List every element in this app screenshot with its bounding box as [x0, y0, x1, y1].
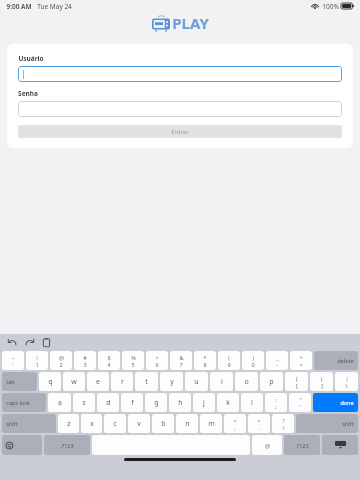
- staticText: |: [345, 375, 349, 382]
- button[interactable]: caps lock: [2, 393, 46, 412]
- staticText: .?123: [60, 442, 74, 449]
- staticText: ]: [321, 382, 323, 389]
- button[interactable]: i: [210, 372, 233, 391]
- button[interactable]: Paste: [41, 337, 52, 348]
- button[interactable]: #: [74, 351, 96, 370]
- button[interactable]: (: [218, 351, 240, 370]
- staticText: Senha: [18, 89, 38, 98]
- button[interactable]: shift: [2, 414, 56, 433]
- button[interactable]: t: [135, 372, 158, 391]
- staticText: [: [296, 382, 298, 389]
- staticText: !: [36, 354, 38, 361]
- staticText: d: [106, 398, 111, 408]
- staticText: =: [299, 361, 303, 368]
- staticText: b: [161, 419, 166, 429]
- staticText: Tue May 24: [37, 2, 72, 11]
- button[interactable]: g: [145, 393, 167, 412]
- button[interactable]: v: [128, 414, 150, 433]
- button[interactable]: x: [81, 414, 102, 433]
- staticText: ): [252, 354, 254, 361]
- button[interactable]: j: [193, 393, 215, 412]
- button[interactable]: }: [310, 372, 333, 391]
- button[interactable]: shift: [296, 414, 358, 433]
- staticText: m: [208, 419, 215, 429]
- staticText: 3: [83, 361, 87, 368]
- button[interactable]: [18, 66, 342, 82]
- button[interactable]: :: [265, 393, 287, 412]
- button[interactable]: q: [39, 372, 61, 391]
- staticText: c: [113, 419, 117, 429]
- button[interactable]: c: [104, 414, 126, 433]
- button[interactable]: {: [285, 372, 308, 391]
- button[interactable]: m: [200, 414, 222, 433]
- button[interactable]: s: [73, 393, 95, 412]
- staticText: .?123: [295, 442, 309, 449]
- staticText: Usuário: [18, 54, 44, 63]
- button[interactable]: ~: [2, 351, 24, 370]
- button[interactable]: b: [152, 414, 174, 433]
- button[interactable]: @: [50, 351, 72, 370]
- button[interactable]: Redo: [24, 337, 35, 348]
- button[interactable]: +: [290, 351, 312, 370]
- staticText: 0: [251, 361, 255, 368]
- staticText: ^: [155, 354, 159, 361]
- button[interactable]: e: [87, 372, 109, 391]
- staticText: #: [83, 354, 87, 361]
- button[interactable]: ?: [272, 414, 294, 433]
- button[interactable]: !: [26, 351, 48, 370]
- staticText: +: [299, 354, 303, 361]
- button[interactable]: a: [48, 393, 71, 412]
- staticText: x: [90, 419, 94, 429]
- staticText: 5: [131, 361, 135, 368]
- button[interactable]: .?123: [284, 435, 320, 455]
- button[interactable]: h: [169, 393, 191, 412]
- button[interactable]: _: [266, 351, 288, 370]
- button[interactable]: %: [122, 351, 144, 370]
- button[interactable]: &: [170, 351, 192, 370]
- button[interactable]: ": [289, 393, 311, 412]
- staticText: j: [203, 398, 205, 408]
- button[interactable]: ^: [146, 351, 168, 370]
- button[interactable]: Entrar: [18, 125, 342, 138]
- staticText: caps lock: [6, 399, 30, 406]
- staticText: t: [145, 377, 148, 387]
- button[interactable]: $: [98, 351, 120, 370]
- button[interactable]: ): [242, 351, 264, 370]
- button[interactable]: r: [111, 372, 133, 391]
- button[interactable]: <: [224, 414, 246, 433]
- button[interactable]: w: [63, 372, 85, 391]
- staticText: h: [178, 398, 183, 408]
- staticText: 6: [155, 361, 159, 368]
- staticText: shift: [342, 420, 354, 427]
- button[interactable]: u: [185, 372, 208, 391]
- staticText: Entrar: [171, 128, 189, 136]
- button[interactable]: y: [160, 372, 183, 391]
- button[interactable]: Emoji: [2, 435, 42, 455]
- staticText: tab: [6, 378, 15, 385]
- button[interactable]: @: [252, 435, 282, 455]
- button[interactable]: done: [313, 393, 358, 412]
- button[interactable]: k: [217, 393, 239, 412]
- button[interactable]: [18, 101, 342, 117]
- button[interactable]: |: [335, 372, 358, 391]
- staticText: _: [276, 354, 279, 361]
- button[interactable]: delete: [314, 351, 358, 370]
- button[interactable]: *: [194, 351, 216, 370]
- button[interactable]: o: [235, 372, 258, 391]
- button[interactable]: p: [260, 372, 283, 391]
- staticText: (: [228, 354, 230, 361]
- staticText: @: [265, 442, 270, 449]
- staticText: /: [282, 424, 285, 431]
- staticText: g: [154, 398, 159, 408]
- button[interactable]: >: [248, 414, 270, 433]
- button[interactable]: Undo: [7, 337, 18, 348]
- button[interactable]: tab: [2, 372, 37, 391]
- button[interactable]: d: [97, 393, 119, 412]
- button[interactable]: l: [241, 393, 263, 412]
- button[interactable]: f: [121, 393, 143, 412]
- button[interactable]: .?123: [44, 435, 90, 455]
- button[interactable]: Hide keyboard: [322, 435, 358, 455]
- button[interactable]: z: [58, 414, 79, 433]
- button[interactable]: n: [176, 414, 198, 433]
